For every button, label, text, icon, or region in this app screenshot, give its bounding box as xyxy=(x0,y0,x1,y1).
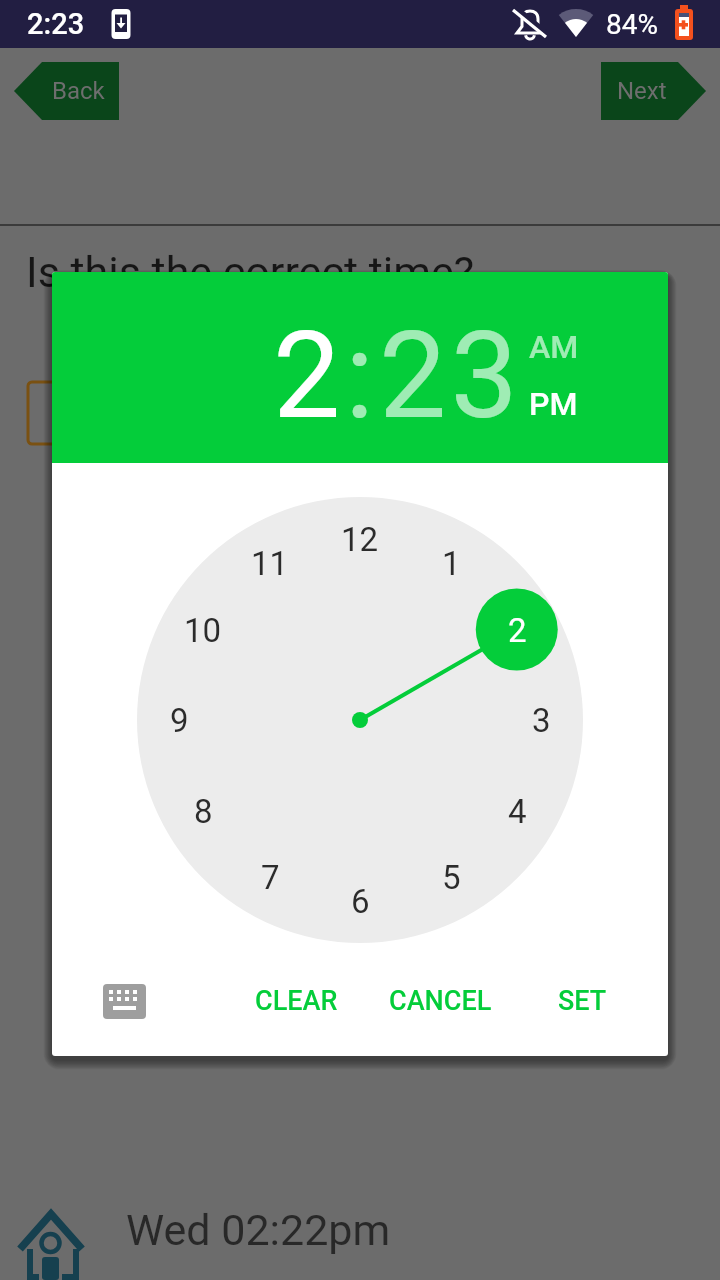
staticText: Next xyxy=(617,77,667,105)
staticText: 23 xyxy=(379,306,522,447)
staticText: 3 xyxy=(532,701,551,740)
staticText: 5 xyxy=(442,858,461,897)
button[interactable]: CANCEL xyxy=(370,971,510,1031)
staticText: CLEAR xyxy=(255,985,338,1017)
staticText: 2:23 xyxy=(27,7,85,41)
button[interactable]: AM xyxy=(529,328,579,366)
button[interactable]: Next xyxy=(601,62,706,120)
staticText: 2 xyxy=(508,611,527,650)
staticText: 84% xyxy=(606,8,658,41)
staticText: 12 xyxy=(341,520,379,559)
staticText: Is this the correct time? xyxy=(26,247,475,297)
staticText: 2 xyxy=(273,306,345,447)
staticText: CANCEL xyxy=(389,985,492,1017)
staticText: 4 xyxy=(508,792,527,831)
staticText: 8 xyxy=(194,792,213,831)
staticText: 6 xyxy=(351,882,370,921)
button[interactable]: Back xyxy=(14,62,119,120)
button[interactable]: SET xyxy=(512,971,652,1031)
button[interactable]: PM xyxy=(529,385,578,423)
button[interactable] xyxy=(97,977,152,1025)
staticText: Wed 02:22pm xyxy=(126,1205,391,1255)
staticText: Back xyxy=(52,77,105,105)
staticText: SET xyxy=(558,985,607,1017)
staticText: 7 xyxy=(261,858,280,897)
staticText: 11 xyxy=(251,544,289,583)
staticText: AM xyxy=(529,328,579,366)
staticText: 10 xyxy=(184,611,222,650)
staticText: PM xyxy=(529,385,578,423)
staticText: : xyxy=(345,306,379,447)
staticText: 9 xyxy=(170,701,189,740)
button[interactable]: CLEAR xyxy=(226,971,366,1031)
staticText: 1 xyxy=(442,544,461,583)
